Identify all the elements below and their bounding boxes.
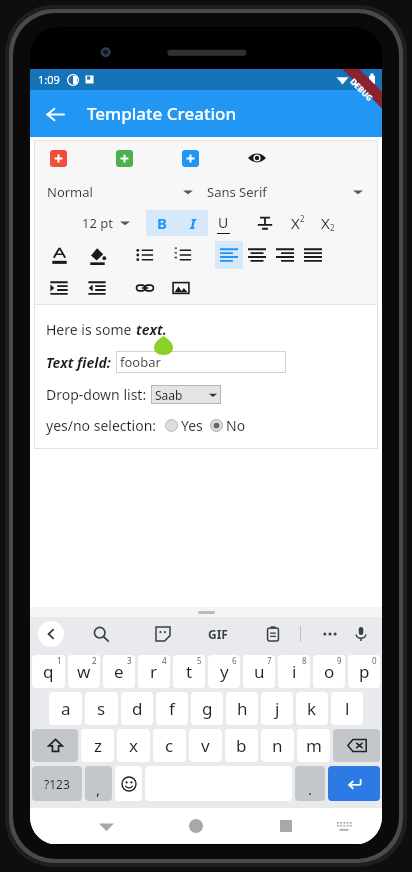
button[interactable]: Recents — [269, 809, 303, 843]
button[interactable]: p — [348, 655, 380, 688]
button[interactable]: Increase indent — [45, 274, 73, 302]
button[interactable]: Home — [179, 809, 213, 843]
button[interactable]: Add row — [50, 150, 67, 167]
button[interactable]: Preview — [243, 144, 271, 172]
button[interactable]: Strikethrough — [251, 209, 279, 237]
staticText: Sans Serif — [207, 183, 267, 201]
button[interactable]: d — [121, 692, 153, 725]
button[interactable]: r — [138, 655, 170, 688]
staticText: x — [129, 734, 138, 757]
staticText: 1 — [57, 655, 62, 666]
button[interactable]: Add field — [182, 150, 199, 167]
button[interactable]: i — [278, 655, 310, 688]
button[interactable]: s — [85, 692, 118, 725]
button[interactable]: l — [331, 692, 363, 725]
button[interactable]: Voice input — [348, 621, 374, 647]
button[interactable]: foobar — [116, 351, 286, 373]
button[interactable]: Align center — [243, 241, 271, 269]
staticText: Text field: — [46, 353, 111, 372]
staticText: 2 — [330, 222, 335, 233]
button[interactable]: Search — [88, 621, 114, 647]
button[interactable]: Yes — [165, 416, 203, 435]
staticText: 3 — [127, 655, 132, 666]
button[interactable]: u — [243, 655, 275, 688]
button[interactable]: o — [313, 655, 345, 688]
button[interactable]: X — [315, 210, 341, 236]
button[interactable]: Bulleted list — [131, 241, 159, 269]
staticText: h — [237, 697, 248, 720]
button[interactable]: Justify — [299, 241, 327, 269]
staticText: 2 — [92, 655, 97, 666]
button[interactable]: f — [156, 692, 188, 725]
button[interactable]: , — [85, 766, 112, 801]
button[interactable]: a — [49, 692, 82, 725]
button[interactable]: . — [295, 766, 325, 801]
button[interactable]: 12 pt — [82, 209, 134, 237]
staticText: ?123 — [44, 776, 70, 792]
button[interactable]: h — [226, 692, 258, 725]
button[interactable]: j — [261, 692, 293, 725]
button[interactable]: Insert image — [167, 274, 195, 302]
button[interactable]: Text color — [45, 241, 73, 269]
staticText: 12 pt — [82, 214, 113, 232]
button[interactable]: c — [153, 729, 186, 762]
staticText: text. — [136, 320, 167, 339]
button[interactable]: More options — [317, 621, 343, 647]
staticText: e — [114, 660, 124, 683]
button[interactable]: I — [177, 210, 208, 236]
button[interactable]: Shift — [32, 729, 78, 762]
button[interactable]: Stickers — [150, 621, 176, 647]
button[interactable]: Saab — [151, 385, 221, 404]
button[interactable]: e — [103, 655, 135, 688]
button[interactable]: m — [297, 729, 330, 762]
button[interactable]: z — [81, 729, 114, 762]
staticText: yes/no selection: — [46, 416, 157, 435]
button[interactable]: y — [208, 655, 240, 688]
button[interactable]: Enter — [328, 766, 380, 801]
staticText: n — [272, 734, 283, 757]
staticText: X — [291, 213, 300, 233]
staticText: 6 — [232, 655, 237, 666]
button[interactable]: Align right — [271, 241, 299, 269]
button[interactable]: Sans Serif — [207, 178, 367, 206]
button[interactable]: Emoji — [115, 766, 142, 801]
button[interactable]: Normal — [47, 178, 197, 206]
staticText: a — [61, 697, 71, 720]
button[interactable]: Back — [35, 94, 75, 134]
staticText: c — [165, 734, 174, 757]
button[interactable]: ?123 — [32, 766, 82, 801]
button[interactable]: Insert link — [131, 274, 159, 302]
staticText: r — [150, 660, 158, 683]
staticText: p — [359, 660, 370, 683]
button[interactable]: Decrease indent — [83, 274, 111, 302]
button[interactable]: x — [117, 729, 150, 762]
button[interactable]: n — [261, 729, 294, 762]
button[interactable]: Switch keyboard — [327, 809, 361, 843]
button[interactable]: Clipboard — [260, 621, 286, 647]
button[interactable]: Highlight color — [83, 241, 111, 269]
button[interactable]: Backspace — [333, 729, 380, 762]
button[interactable]: k — [296, 692, 328, 725]
button[interactable]: v — [189, 729, 222, 762]
button[interactable]: b — [225, 729, 258, 762]
button[interactable]: Add column — [116, 150, 133, 167]
button[interactable]: Back — [38, 621, 64, 647]
button[interactable]: Align left — [215, 241, 243, 269]
button[interactable]: g — [191, 692, 223, 725]
button[interactable]: Numbered list — [169, 241, 197, 269]
button[interactable]: X — [285, 210, 311, 236]
button[interactable]: U — [208, 210, 239, 236]
button[interactable]: t — [173, 655, 205, 688]
button[interactable]: Hide keyboard — [89, 809, 123, 843]
staticText: 1:09 — [38, 72, 60, 87]
button[interactable]: q — [32, 655, 65, 688]
button[interactable]: GIF — [208, 621, 228, 647]
button[interactable]: No — [210, 416, 246, 435]
button[interactable]: w — [68, 655, 100, 688]
staticText: 9 — [337, 655, 342, 666]
staticText: 5 — [197, 655, 202, 666]
staticText: d — [132, 697, 143, 720]
staticText: Saab — [155, 387, 183, 403]
button[interactable]: B — [146, 210, 177, 236]
